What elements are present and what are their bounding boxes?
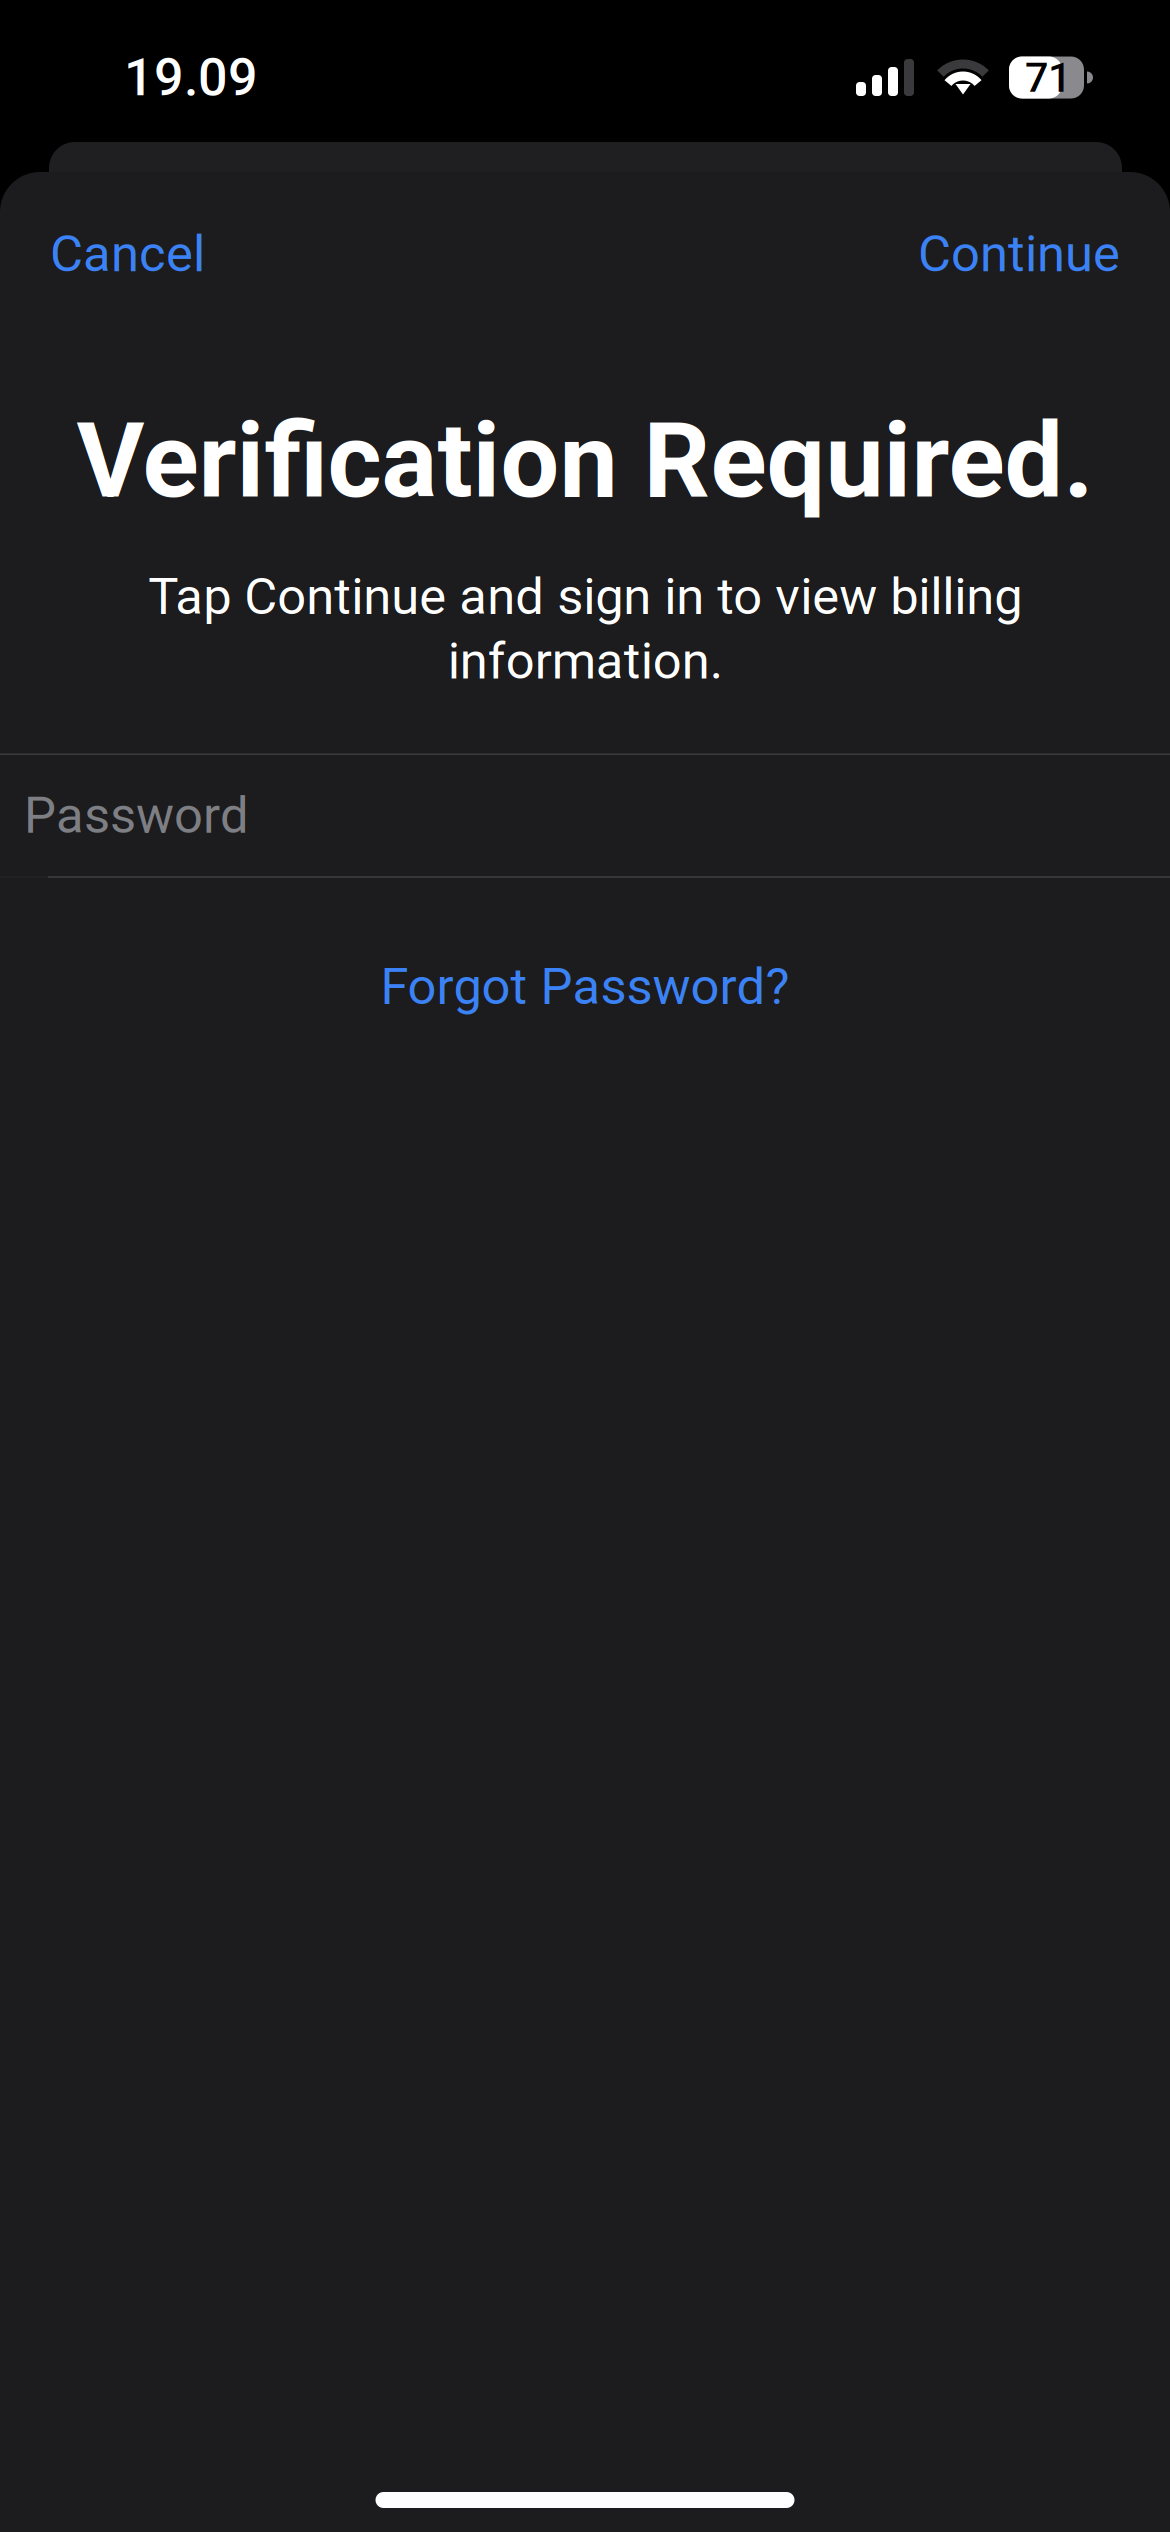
staticText: 19.09 [124, 47, 258, 108]
staticText: Password [24, 786, 249, 845]
button[interactable]: Continue [878, 172, 1170, 336]
button[interactable]: Cancel [0, 172, 245, 336]
button[interactable]: Forgot Password? [0, 949, 1170, 1025]
staticText: 71 [1025, 53, 1071, 102]
staticText: Cancel [50, 224, 205, 284]
staticText: Tap Continue and sign in to view billing… [148, 567, 1022, 691]
staticText: Verification Required. [76, 400, 1093, 522]
button[interactable]: Password [0, 754, 1170, 878]
staticText: Forgot Password? [380, 957, 789, 1016]
staticText: Continue [918, 224, 1120, 284]
